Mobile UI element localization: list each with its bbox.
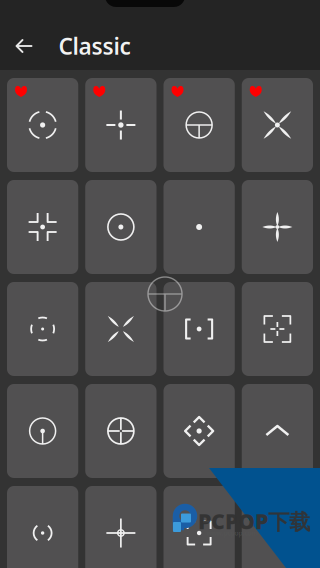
button[interactable]: Reticle style 11 [163,282,235,376]
button[interactable]: Reticle style 14 [85,384,156,478]
button[interactable]: Reticle style 1 [7,78,78,172]
staticText: www.pcpop.com [206,529,257,537]
button[interactable]: Reticle style 6 [85,180,156,274]
button[interactable]: Reticle style 7 [163,180,235,274]
button[interactable]: Reticle style 12 [242,282,313,376]
button[interactable]: Reticle style 5 [7,180,78,274]
staticText: PCPOP下载 [198,507,310,535]
button[interactable]: Reticle style 19 [163,486,235,568]
button[interactable]: Reticle style 4 [242,78,313,172]
button[interactable]: Reticle style 2 [85,78,156,172]
button[interactable]: Reticle style 13 [7,384,78,478]
button[interactable]: Reticle style 20 [242,486,313,568]
button[interactable]: Reticle style 3 [163,78,235,172]
staticText: Classic [58,31,130,61]
button[interactable]: Reticle style 18 [85,486,156,568]
button[interactable]: Reticle style 17 [7,486,78,568]
button[interactable]: Reticle style 10 [85,282,156,376]
button[interactable]: Back [0,24,48,68]
button[interactable]: Reticle style 8 [242,180,313,274]
button[interactable]: Reticle style 9 [7,282,78,376]
button[interactable]: Reticle style 16 [242,384,313,478]
button[interactable]: Reticle style 15 [163,384,235,478]
